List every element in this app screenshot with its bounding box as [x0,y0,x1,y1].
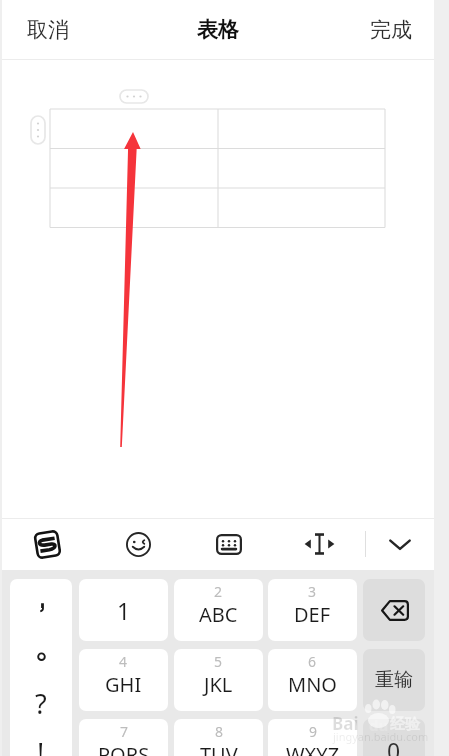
staticText: Bai [332,712,359,735]
staticText: 取消 [27,17,69,43]
button[interactable]: ? [10,579,72,756]
button[interactable]: 4 [79,649,168,711]
button[interactable]: 7 [79,719,168,756]
button[interactable]: Backspace [363,579,425,641]
button[interactable]: 9 [268,719,357,756]
staticText: ? [35,685,47,722]
staticText: 7 [120,722,129,741]
staticText: du [369,715,389,735]
button[interactable]: 重输 [363,649,425,711]
staticText: 1 [117,595,131,626]
button[interactable]: Hide keyboard [366,518,433,570]
staticText: GHI [105,671,142,698]
staticText: 3 [308,582,317,601]
button[interactable]: Emoji [92,518,184,570]
staticText: 9 [309,722,318,741]
staticText: ! [37,734,45,756]
staticText: 4 [119,652,128,671]
staticText: 8 [215,722,224,741]
button[interactable]: 0 [363,719,425,756]
button[interactable]: 1 [79,579,168,641]
staticText: DEF [294,601,331,628]
staticText: 0 [387,735,401,756]
staticText: jingyan.baidu.com [333,729,429,744]
staticText: MNO [288,671,337,698]
button[interactable]: Keyboard [184,518,274,570]
button[interactable]: 5 [174,649,263,711]
staticText: 经验 [390,715,420,734]
staticText: 5 [214,652,223,671]
button[interactable]: 3 [268,579,357,641]
button[interactable]: 8 [174,719,263,756]
button[interactable]: 6 [268,649,357,711]
button[interactable]: 取消 [11,7,85,53]
button[interactable]: Sogou input method [2,518,92,570]
staticText: ABC [199,601,238,628]
button[interactable]: 完成 [354,7,428,53]
staticText: 完成 [370,17,412,43]
staticText: 表格 [197,17,239,43]
staticText: PQRS [98,741,150,756]
button[interactable]: 2 [174,579,263,641]
staticText: 6 [308,652,317,671]
staticText: JKL [204,671,233,698]
staticText: TUV [200,741,238,756]
staticText: WXYZ [286,741,340,756]
staticText: 重输 [375,668,413,692]
button[interactable]: Move cursor [274,518,365,570]
staticText: 2 [214,582,223,601]
